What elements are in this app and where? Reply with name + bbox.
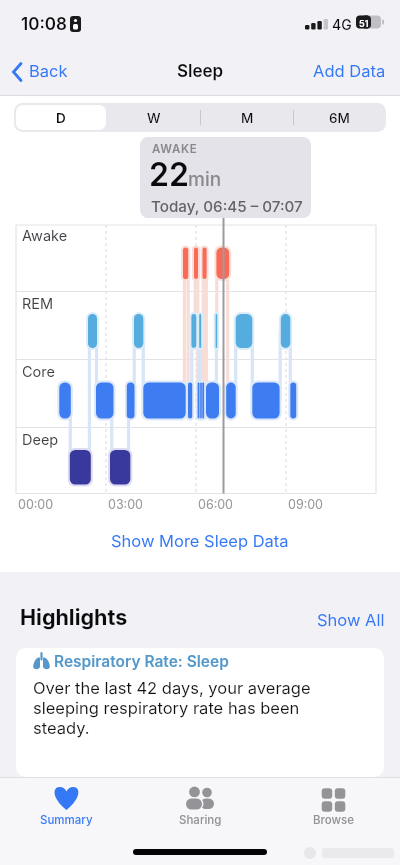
- staticText: Awake: [22, 227, 68, 245]
- button[interactable]: Show All: [312, 608, 388, 632]
- button[interactable]: [110, 528, 290, 554]
- staticText: Highlights: [20, 604, 128, 630]
- staticText: M: [241, 110, 254, 126]
- staticText: 22: [149, 155, 189, 194]
- button[interactable]: Summary: [0, 777, 133, 837]
- button[interactable]: Browse: [267, 777, 400, 837]
- staticText: Browse: [313, 813, 355, 827]
- staticText: 06:00: [198, 497, 234, 512]
- staticText: AWAKE: [152, 142, 198, 156]
- staticText: 6M: [329, 110, 350, 126]
- staticText: Today, 06:45 – 07:07: [151, 197, 303, 215]
- staticText: 10:08: [21, 14, 67, 35]
- staticText: min: [188, 168, 222, 191]
- button[interactable]: Respiratory Rate: Sleep: [16, 648, 384, 777]
- staticText: 51: [359, 18, 369, 29]
- staticText: Show All: [317, 610, 385, 630]
- staticText: Sleep: [177, 61, 224, 82]
- button[interactable]: Add Data: [308, 58, 388, 88]
- button[interactable]: [200, 103, 293, 132]
- button[interactable]: Back: [10, 58, 80, 88]
- staticText: Back: [29, 61, 68, 81]
- staticText: Over the last 42 days, your average slee…: [33, 678, 311, 738]
- staticText: Summary: [40, 813, 93, 827]
- staticText: 03:00: [108, 497, 143, 512]
- button[interactable]: [107, 103, 200, 132]
- staticText: Sharing: [179, 813, 222, 827]
- staticText: Deep: [22, 431, 59, 449]
- staticText: REM: [22, 295, 54, 313]
- staticText: W: [147, 110, 161, 126]
- staticText: Respiratory Rate: Sleep: [54, 652, 229, 671]
- button[interactable]: [16, 105, 106, 130]
- staticText: Core: [22, 363, 55, 381]
- staticText: 00:00: [18, 497, 54, 512]
- staticText: Add Data: [313, 61, 386, 81]
- staticText: 4G: [332, 16, 352, 33]
- staticText: Show More Sleep Data: [111, 531, 289, 551]
- button[interactable]: Sharing: [133, 777, 267, 837]
- button[interactable]: [293, 103, 386, 132]
- staticText: D: [56, 110, 66, 126]
- staticText: 09:00: [288, 497, 324, 512]
